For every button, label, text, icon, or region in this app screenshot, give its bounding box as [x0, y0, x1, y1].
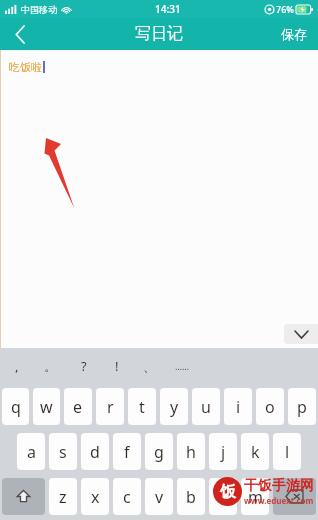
staticText: d: [90, 441, 100, 463]
button[interactable]: Hide keyboard: [284, 324, 318, 344]
staticText: www.eduext.com: [244, 495, 314, 506]
button[interactable]: Shift: [2, 478, 45, 515]
staticText: ?: [81, 357, 87, 375]
staticText: n: [218, 486, 228, 508]
staticText: t: [139, 396, 145, 418]
button[interactable]: x: [81, 478, 109, 515]
staticText: b: [186, 486, 196, 508]
button[interactable]: q: [2, 388, 29, 425]
button[interactable]: !: [100, 348, 133, 384]
button[interactable]: f: [113, 433, 141, 470]
button[interactable]: b: [177, 478, 205, 515]
button[interactable]: l: [273, 433, 301, 470]
staticText: 。: [44, 358, 57, 374]
staticText: o: [265, 396, 275, 418]
button[interactable]: i: [224, 388, 252, 425]
staticText: ,: [15, 357, 19, 375]
staticText: 干饭手游网: [244, 477, 314, 495]
button[interactable]: s: [49, 433, 77, 470]
staticText: g: [154, 441, 164, 463]
button[interactable]: ,: [0, 348, 34, 384]
button[interactable]: p: [288, 388, 316, 425]
staticText: 保存: [281, 26, 307, 42]
button[interactable]: u: [192, 388, 220, 425]
button[interactable]: v: [145, 478, 173, 515]
staticText: p: [297, 396, 307, 418]
staticText: i: [236, 396, 241, 418]
button[interactable]: h: [177, 433, 205, 470]
staticText: k: [251, 441, 260, 463]
staticText: h: [186, 441, 196, 463]
button[interactable]: k: [241, 433, 269, 470]
staticText: 14:31: [155, 2, 181, 16]
staticText: w: [40, 396, 53, 418]
button[interactable]: w: [33, 388, 60, 425]
staticText: !: [115, 357, 119, 375]
button[interactable]: r: [96, 388, 124, 425]
button[interactable]: y: [160, 388, 188, 425]
button[interactable]: j: [209, 433, 237, 470]
button[interactable]: 保存: [270, 18, 318, 50]
button[interactable]: e: [64, 388, 92, 425]
staticText: ……: [175, 360, 190, 372]
staticText: 76%: [276, 3, 294, 15]
staticText: z: [59, 486, 67, 508]
staticText: c: [123, 486, 131, 508]
button[interactable]: Backspace: [273, 478, 316, 515]
staticText: 写日记: [135, 24, 183, 44]
button[interactable]: d: [81, 433, 109, 470]
button[interactable]: z: [49, 478, 77, 515]
staticText: 饭: [220, 482, 236, 502]
button[interactable]: 、: [133, 348, 166, 384]
staticText: a: [27, 441, 36, 463]
staticText: 中国移动: [21, 4, 57, 15]
button[interactable]: a: [17, 433, 45, 470]
staticText: j: [221, 441, 226, 463]
button[interactable]: ……: [166, 348, 199, 384]
button[interactable]: Back: [0, 18, 40, 50]
button[interactable]: c: [113, 478, 141, 515]
staticText: e: [73, 396, 83, 418]
staticText: x: [91, 486, 100, 508]
button[interactable]: g: [145, 433, 173, 470]
staticText: q: [11, 396, 21, 418]
staticText: 、: [143, 358, 156, 374]
button[interactable]: ?: [67, 348, 100, 384]
staticText: 吃饭啦: [9, 60, 42, 74]
staticText: l: [285, 441, 290, 463]
staticText: s: [59, 441, 67, 463]
button[interactable]: 。: [34, 348, 67, 384]
staticText: r: [107, 396, 114, 418]
staticText: f: [124, 441, 130, 463]
button[interactable]: m: [241, 478, 269, 515]
staticText: y: [170, 396, 179, 418]
staticText: v: [155, 486, 164, 508]
staticText: u: [201, 396, 211, 418]
button[interactable]: o: [256, 388, 284, 425]
staticText: m: [248, 486, 263, 508]
button[interactable]: n: [209, 478, 237, 515]
button[interactable]: t: [128, 388, 156, 425]
